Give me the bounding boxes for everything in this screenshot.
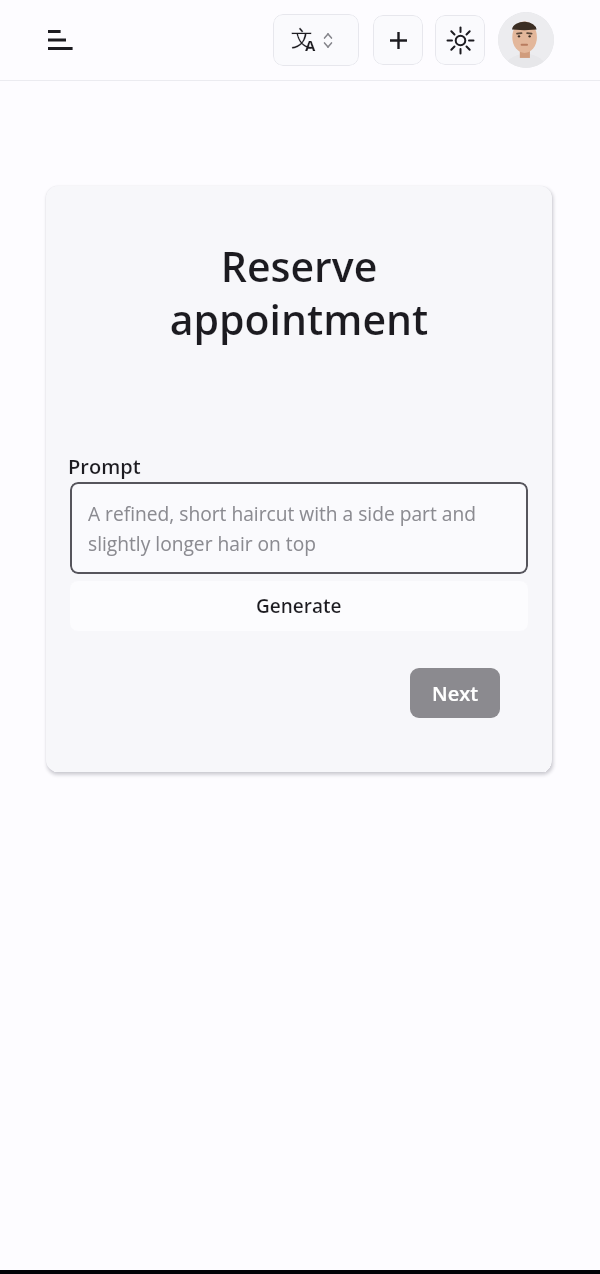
button[interactable]: Next	[410, 668, 500, 718]
staticText: Prompt	[68, 453, 141, 480]
button[interactable]: A refined, short haircut with a side par…	[70, 482, 528, 574]
staticText: 文	[291, 25, 313, 51]
staticText: Next	[432, 680, 479, 707]
staticText: Generate	[256, 593, 342, 619]
button[interactable]: Brightness	[435, 15, 485, 65]
staticText: Reserve appointment	[46, 238, 552, 347]
button[interactable]: Add	[373, 15, 423, 65]
staticText: A	[305, 35, 316, 55]
button[interactable]: Profile	[498, 12, 554, 68]
button[interactable]: Menu	[38, 18, 82, 62]
staticText: A refined, short haircut with a side par…	[88, 500, 516, 556]
button[interactable]: Generate	[70, 581, 528, 631]
button[interactable]: Translate language	[273, 14, 359, 66]
